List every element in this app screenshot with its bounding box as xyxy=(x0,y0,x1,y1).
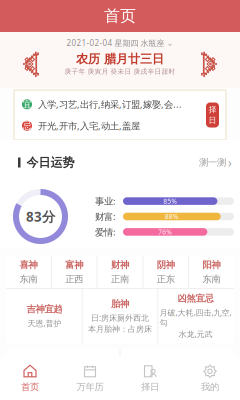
staticText: 本月胎神：占房床 xyxy=(88,324,152,334)
staticText: 开光,开市,入宅,动土,盖屋 xyxy=(38,120,140,132)
staticText: 富神 xyxy=(65,259,83,270)
staticText: 天恩,普护 xyxy=(27,318,61,328)
staticText: 日 xyxy=(208,115,216,125)
staticText: 阴神 xyxy=(157,259,175,270)
staticText: 我的 xyxy=(201,381,219,393)
staticText: 日:房床厕外西北 xyxy=(91,312,149,323)
staticText: 择日 xyxy=(141,381,159,393)
button[interactable]: 万年历 xyxy=(60,357,120,400)
staticText: 首页 xyxy=(21,381,39,393)
staticText: 东南 xyxy=(19,273,37,285)
staticText: 83分 xyxy=(26,208,55,225)
staticText: 88% xyxy=(165,212,179,221)
staticText: 正南 xyxy=(111,273,129,285)
button[interactable]: 择日 xyxy=(120,357,180,400)
staticText: 农历 腊月廿三日 xyxy=(76,52,164,66)
staticText: 首页 xyxy=(104,6,136,26)
button[interactable]: 我的 xyxy=(180,357,240,400)
staticText: 万年历 xyxy=(76,381,103,393)
staticText: 癸不词讼理弱敌强 xyxy=(31,371,95,381)
button[interactable]: 测一测 xyxy=(199,154,232,170)
staticText: 76% xyxy=(158,227,172,236)
staticText: 事业: xyxy=(95,195,116,207)
staticText: 正东 xyxy=(157,273,175,285)
staticText: 水龙,元武 xyxy=(179,329,213,339)
staticText: 东南 xyxy=(203,273,221,285)
staticText: 凶煞宜忌 xyxy=(178,293,214,304)
button[interactable]: 2021-02-04 星期四 水瓶座 xyxy=(66,35,173,51)
staticText: 阳神 xyxy=(203,259,221,270)
staticText: 择 xyxy=(208,105,216,114)
staticText: 入学,习艺,出行,纳采,订盟,嫁娶,会亲友… xyxy=(38,98,183,110)
staticText: 财富: xyxy=(95,210,116,223)
staticText: 月破,大耗,四击,九空,勾 xyxy=(160,307,232,328)
staticText: 青龙,明堂,金匮 xyxy=(151,371,203,381)
staticText: 2021-02-04 星期四 水瓶座 xyxy=(66,38,164,48)
staticText: 财神 xyxy=(111,259,129,270)
staticText: 庚子年 庚寅月 癸未日 庚戌辛日甜时 xyxy=(64,67,175,76)
staticText: › xyxy=(228,154,232,170)
staticText: 今日运势 xyxy=(26,155,74,170)
button[interactable]: 择 xyxy=(206,102,219,127)
staticText: 忌 xyxy=(22,120,31,131)
button[interactable]: 首页 xyxy=(0,357,60,400)
staticText: 测一测 xyxy=(199,157,226,168)
staticText: 喜神 xyxy=(19,259,37,270)
staticText: ⌄ xyxy=(166,38,173,48)
staticText: 爱情: xyxy=(95,226,116,238)
staticText: 吉神宜趋 xyxy=(26,303,62,315)
staticText: 宜 xyxy=(22,99,31,110)
staticText: 正西 xyxy=(65,273,83,285)
staticText: 85% xyxy=(163,197,177,206)
staticText: 胎神 xyxy=(111,298,129,309)
